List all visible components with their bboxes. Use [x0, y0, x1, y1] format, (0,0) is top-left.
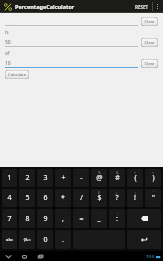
staticText: ' — [153, 190, 154, 195]
staticText: , — [62, 214, 64, 224]
button[interactable]: > — [145, 169, 161, 187]
staticText: 7 — [7, 214, 12, 224]
button[interactable]: < — [127, 169, 143, 187]
staticText: : — [116, 214, 118, 224]
button[interactable]: + — [55, 169, 71, 187]
button[interactable]: App icon — [3, 2, 12, 11]
staticText: > — [152, 170, 155, 175]
staticText: / — [80, 193, 83, 203]
staticText: 4 — [7, 193, 12, 203]
button[interactable]: Clear — [141, 59, 158, 68]
button[interactable]: Enter — [127, 230, 161, 249]
button[interactable]: RESET — [135, 0, 149, 13]
staticText: 6 — [43, 193, 48, 203]
staticText: ! — [134, 193, 136, 203]
button[interactable]: ¡ — [127, 189, 143, 207]
button[interactable]: - — [91, 209, 107, 228]
button[interactable]: 3 — [37, 169, 53, 187]
staticText: Clear — [144, 19, 155, 25]
button[interactable]: Delete — [127, 209, 161, 228]
button[interactable]: 1 — [2, 169, 17, 187]
button[interactable]: ; — [109, 209, 125, 228]
staticText: 0 — [43, 235, 48, 245]
staticText: is — [5, 29, 9, 36]
staticText: 50 — [5, 39, 11, 46]
staticText: @ — [96, 173, 103, 183]
staticText: Clear — [144, 40, 155, 46]
button[interactable]: Clear — [141, 17, 158, 26]
staticText: . — [62, 235, 64, 245]
button[interactable]: 50 — [5, 39, 138, 47]
staticText: 1 — [7, 173, 12, 183]
button[interactable]: 8 — [19, 209, 35, 228]
staticText: ? — [115, 193, 119, 203]
staticText: ( — [134, 173, 137, 183]
button[interactable]: % — [91, 169, 107, 187]
staticText: + — [61, 173, 66, 183]
staticText: - — [98, 210, 100, 215]
staticText: * — [61, 193, 65, 203]
button[interactable]: , — [55, 209, 71, 228]
button[interactable]: Calculate — [5, 70, 29, 79]
button[interactable]: 9 — [37, 209, 53, 228]
staticText: 3 — [43, 173, 48, 183]
button[interactable]: Home — [20, 252, 29, 261]
staticText: 2 — [25, 173, 30, 183]
staticText: _ — [97, 214, 101, 224]
button[interactable]: 2 — [19, 169, 35, 187]
staticText: Calculate — [8, 72, 26, 78]
button[interactable]: * — [55, 189, 71, 207]
staticText: 8 — [25, 214, 30, 224]
button[interactable]: £ — [91, 189, 107, 207]
staticText: {&= — [23, 237, 31, 243]
staticText: $ — [97, 193, 102, 203]
staticText: £ — [98, 190, 101, 195]
button[interactable]: More options — [153, 0, 161, 13]
button[interactable]: Back — [4, 252, 13, 261]
staticText: - — [80, 173, 83, 183]
staticText: ; — [117, 210, 118, 215]
button[interactable]: 6 — [37, 189, 53, 207]
button[interactable]: 5 — [19, 189, 35, 207]
button[interactable]: ' — [145, 189, 161, 207]
staticText: 9 — [43, 214, 48, 224]
button[interactable]: 10 — [5, 60, 138, 68]
staticText: & — [116, 170, 119, 175]
staticText: 10 — [5, 60, 11, 67]
staticText: < — [134, 170, 137, 175]
staticText: 7:53 — [146, 254, 154, 259]
staticText: abc — [6, 237, 13, 243]
button[interactable]: = — [73, 209, 89, 228]
button[interactable]: abc — [2, 230, 17, 249]
staticText: ) — [152, 173, 155, 183]
staticText: Clear — [144, 61, 155, 67]
button[interactable]: / — [73, 189, 89, 207]
staticText: # — [115, 173, 120, 183]
staticText: PercentageCalculator — [15, 3, 75, 10]
button[interactable]: Recent apps — [36, 252, 45, 261]
button[interactable]: 4 — [2, 189, 17, 207]
staticText: 5 — [25, 193, 30, 203]
button[interactable] — [5, 18, 138, 26]
button[interactable]: Clear — [141, 38, 158, 47]
staticText: ¡ — [135, 190, 136, 195]
button[interactable]: . — [55, 230, 71, 249]
staticText: % — [98, 170, 101, 175]
button[interactable]: 0 — [37, 230, 53, 249]
button[interactable]: 7 — [2, 209, 17, 228]
button[interactable]: - — [73, 169, 89, 187]
button[interactable]: ¿ — [109, 189, 125, 207]
button[interactable]: & — [109, 169, 125, 187]
staticText: ¿ — [116, 190, 118, 195]
button[interactable]: {&= — [19, 230, 35, 249]
staticText: of — [5, 50, 10, 57]
staticText: " — [152, 193, 155, 203]
staticText: = — [79, 214, 84, 224]
staticText: RESET — [135, 4, 149, 10]
